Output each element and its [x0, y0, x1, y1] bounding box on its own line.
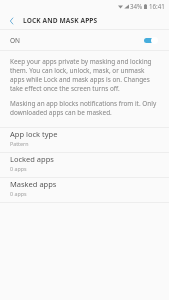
- staticText: downloaded apps can be masked.: [10, 108, 112, 117]
- button[interactable]: Masked apps: [0, 178, 169, 202]
- staticText: take effect once the screen turns off.: [10, 84, 120, 93]
- staticText: them. You can lock, unlock, mask, or unm…: [10, 66, 145, 75]
- staticText: 34%: [130, 2, 143, 10]
- staticText: Masked apps: [10, 179, 57, 189]
- staticText: 0 apps: [10, 190, 27, 197]
- staticText: LOCK AND MASK APPS: [23, 16, 98, 25]
- staticText: ON: [10, 36, 21, 45]
- staticText: apps while Lock and mask apps is on. Cha…: [10, 75, 150, 84]
- button[interactable]: App lock type: [0, 128, 169, 152]
- staticText: 16:41: [149, 2, 165, 10]
- staticText: Masking an app blocks notifications from…: [10, 99, 157, 108]
- button[interactable]: ON: [0, 30, 169, 50]
- button[interactable]: Navigate up: [0, 12, 22, 29]
- staticText: Keep your apps private by masking and lo…: [10, 57, 152, 66]
- staticText: 0 apps: [10, 165, 27, 172]
- staticText: Locked apps: [10, 154, 54, 164]
- staticText: Pattern: [10, 140, 29, 147]
- staticText: App lock type: [10, 129, 58, 139]
- button[interactable]: Lock and mask apps toggle: [144, 35, 158, 45]
- button[interactable]: Locked apps: [0, 153, 169, 177]
